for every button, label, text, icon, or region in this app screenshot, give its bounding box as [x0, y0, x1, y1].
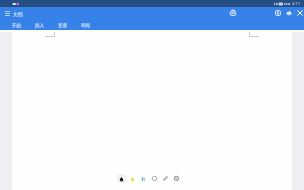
button[interactable]: Yellow highlighter: [127, 172, 138, 184]
staticText: 插入: [35, 23, 45, 29]
button[interactable]: Projection: [228, 8, 238, 18]
staticText: 查看: [58, 23, 68, 29]
staticText: 开始: [12, 23, 22, 29]
button[interactable]: Menu: [3, 9, 12, 18]
button[interactable]: Pencil: [160, 172, 171, 184]
button[interactable]: Cloud backup: [284, 8, 294, 18]
staticText: 文档: [13, 11, 23, 17]
button[interactable]: Undo: [273, 8, 283, 18]
button[interactable]: Green marker: [138, 172, 149, 184]
button[interactable]: Black pen: [116, 172, 127, 184]
staticText: 4:17: [292, 1, 300, 6]
button[interactable]: 查看: [51, 19, 74, 30]
button[interactable]: 审阅: [74, 19, 97, 30]
staticText: 审阅: [81, 23, 91, 29]
button[interactable]: 插入: [28, 19, 51, 30]
button[interactable]: Eraser: [149, 172, 160, 184]
button[interactable]: Close: [295, 8, 304, 18]
button[interactable]: 开始: [5, 19, 28, 30]
button[interactable]: Settings: [171, 172, 182, 184]
